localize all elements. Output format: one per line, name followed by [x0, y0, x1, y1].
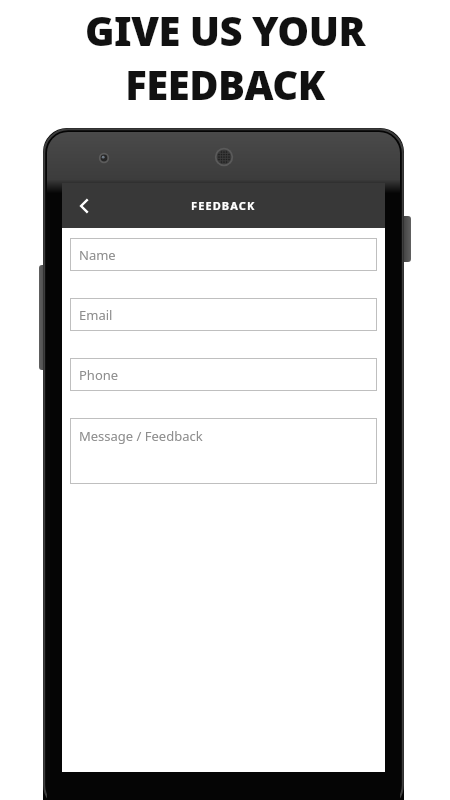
staticText: FEEDBACK — [191, 198, 256, 213]
button[interactable]: Back — [62, 184, 106, 228]
staticText: Email — [79, 306, 113, 324]
staticText: Message / Feedback — [79, 427, 203, 445]
staticText: GIVE US YOUR FEEDBACK — [0, 3, 450, 111]
button[interactable]: Phone — [70, 358, 377, 391]
button[interactable]: Message / Feedback — [70, 418, 377, 484]
button[interactable]: Name — [70, 238, 377, 271]
button[interactable]: Email — [70, 298, 377, 331]
staticText: Phone — [79, 366, 119, 384]
staticText: Name — [79, 246, 116, 264]
